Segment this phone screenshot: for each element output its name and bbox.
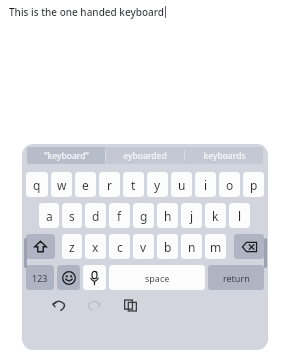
button[interactable]: Undo bbox=[48, 295, 68, 315]
button[interactable]: h bbox=[157, 203, 178, 228]
button[interactable]: z bbox=[62, 234, 82, 259]
staticText: y bbox=[154, 177, 161, 193]
staticText: space bbox=[145, 272, 170, 284]
button[interactable]: k bbox=[205, 203, 226, 228]
staticText: eyboarded bbox=[123, 150, 167, 162]
staticText: This is the one handed keyboard bbox=[9, 5, 165, 19]
staticText: return bbox=[223, 272, 250, 284]
button[interactable]: Backspace bbox=[234, 234, 264, 259]
button[interactable]: “keyboard” bbox=[27, 147, 105, 164]
button[interactable]: t bbox=[123, 172, 144, 197]
button[interactable]: Paste bbox=[120, 295, 140, 315]
staticText: b bbox=[164, 239, 172, 255]
button[interactable]: Shift bbox=[26, 234, 55, 259]
button[interactable]: l bbox=[229, 203, 250, 228]
button[interactable]: v bbox=[133, 234, 154, 259]
staticText: q bbox=[33, 177, 41, 193]
button[interactable]: n bbox=[181, 234, 202, 259]
button[interactable]: return bbox=[208, 265, 264, 290]
staticText: keyboards bbox=[203, 150, 246, 162]
staticText: d bbox=[92, 208, 100, 224]
staticText: “keyboard” bbox=[44, 150, 89, 162]
staticText: j bbox=[190, 208, 194, 224]
staticText: r bbox=[107, 177, 112, 193]
button[interactable]: i bbox=[195, 172, 216, 197]
button[interactable]: eyboarded bbox=[106, 147, 184, 164]
button[interactable]: s bbox=[62, 203, 82, 228]
staticText: c bbox=[117, 239, 123, 255]
staticText: 123 bbox=[32, 272, 48, 284]
staticText: g bbox=[140, 208, 148, 224]
button[interactable]: c bbox=[109, 234, 130, 259]
staticText: z bbox=[69, 239, 75, 255]
staticText: f bbox=[117, 208, 122, 224]
button[interactable]: d bbox=[85, 203, 106, 228]
staticText: n bbox=[188, 239, 196, 255]
button[interactable]: Move keyboard right bbox=[264, 238, 267, 268]
button[interactable]: Move keyboard left bbox=[24, 238, 27, 268]
button[interactable]: a bbox=[39, 203, 59, 228]
button[interactable]: x bbox=[85, 234, 106, 259]
staticText: o bbox=[226, 177, 234, 193]
staticText: t bbox=[131, 177, 136, 193]
staticText: s bbox=[69, 208, 75, 224]
button[interactable]: b bbox=[157, 234, 178, 259]
button[interactable]: keyboards bbox=[185, 147, 263, 164]
staticText: a bbox=[46, 208, 53, 224]
button[interactable]: j bbox=[181, 203, 202, 228]
button[interactable]: p bbox=[243, 172, 264, 197]
button[interactable]: f bbox=[109, 203, 130, 228]
button[interactable]: 123 bbox=[26, 265, 54, 290]
button[interactable]: Dictate bbox=[83, 265, 106, 290]
button[interactable]: e bbox=[75, 172, 96, 197]
staticText: k bbox=[212, 208, 219, 224]
button[interactable]: Redo bbox=[84, 295, 104, 315]
staticText: w bbox=[57, 177, 67, 193]
button[interactable]: u bbox=[171, 172, 192, 197]
button[interactable]: q bbox=[26, 172, 48, 197]
button[interactable]: y bbox=[147, 172, 168, 197]
staticText: v bbox=[140, 239, 147, 255]
staticText: h bbox=[164, 208, 172, 224]
button[interactable]: o bbox=[219, 172, 240, 197]
button[interactable]: g bbox=[133, 203, 154, 228]
button[interactable]: w bbox=[51, 172, 72, 197]
button[interactable]: Emoji bbox=[57, 265, 80, 290]
staticText: m bbox=[210, 239, 222, 255]
staticText: l bbox=[238, 208, 242, 224]
staticText: x bbox=[92, 239, 99, 255]
staticText: u bbox=[178, 177, 186, 193]
button[interactable]: r bbox=[99, 172, 120, 197]
staticText: i bbox=[204, 177, 208, 193]
button[interactable]: space bbox=[109, 265, 205, 290]
staticText: p bbox=[250, 177, 258, 193]
button[interactable]: m bbox=[205, 234, 226, 259]
staticText: e bbox=[82, 177, 89, 193]
